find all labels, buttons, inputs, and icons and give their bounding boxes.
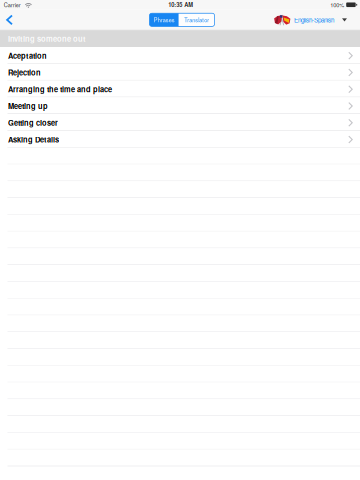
staticText: Arranging the time and place [8,84,112,95]
button[interactable]: Rejection [0,64,360,81]
button[interactable]: English-Spanish [274,9,347,30]
staticText: 100% [330,1,344,9]
staticText: 10:35 AM [168,1,193,9]
button[interactable]: Arranging the time and place [0,80,360,97]
button[interactable]: Getting closer [0,114,360,131]
button[interactable]: Meeting up [0,97,360,114]
staticText: Carrier [4,1,21,9]
staticText: Phrases [154,16,175,24]
staticText: Meeting up [8,101,48,111]
button[interactable]: Asking Details [0,131,360,148]
staticText: Aceptation [8,50,47,61]
button[interactable]: Aceptation [0,47,360,64]
staticText: English-Spanish [294,15,334,24]
button[interactable]: Back [0,9,18,30]
staticText: Getting closer [8,117,58,128]
staticText: Rejection [8,67,41,78]
staticText: Translator [184,16,209,24]
button[interactable]: Translator [179,13,215,26]
staticText: Asking Details [8,134,59,145]
staticText: Inviting someone out [8,33,86,44]
button[interactable]: Phrases [149,13,179,26]
